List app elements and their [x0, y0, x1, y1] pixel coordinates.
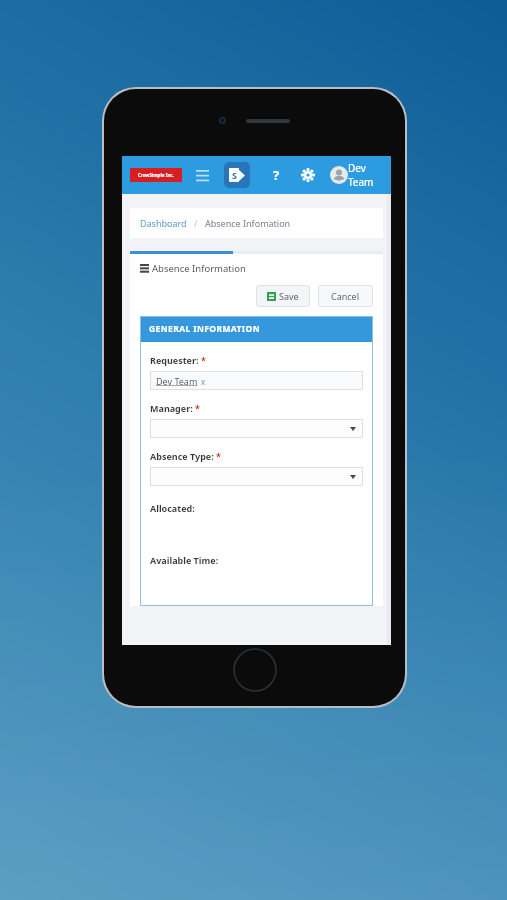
staticText: Manager:: [150, 402, 193, 414]
button[interactable]: CrowSimple Inc.: [130, 168, 182, 182]
staticText: GENERAL INFORMATION: [149, 323, 260, 335]
button[interactable]: SharePoint: [224, 162, 250, 188]
staticText: *: [195, 402, 200, 414]
staticText: Requester:: [150, 354, 199, 366]
staticText: Absence Infomation: [205, 217, 291, 229]
button[interactable]: Dropdown: [150, 419, 363, 438]
staticText: Dev Team: [348, 161, 383, 189]
staticText: Dev Team: [156, 375, 198, 387]
button[interactable]: Help: [266, 165, 286, 185]
staticText: Dashboard: [140, 217, 187, 229]
staticText: /: [187, 217, 205, 229]
staticText: *: [216, 450, 221, 462]
staticText: Absence Information: [152, 262, 246, 275]
staticText: Available Time:: [150, 554, 219, 566]
staticText: S: [232, 169, 237, 181]
button[interactable]: Dev Team: [150, 371, 363, 390]
staticText: Save: [279, 290, 299, 302]
staticText: Absence Type:: [150, 450, 214, 462]
staticText: CrowSimple Inc.: [138, 172, 174, 178]
button[interactable]: Dropdown: [150, 467, 363, 486]
button[interactable]: Menu: [192, 165, 212, 185]
button[interactable]: Settings: [298, 165, 318, 185]
button[interactable]: Dev Team: [330, 161, 383, 189]
staticText: Allocated:: [150, 502, 195, 514]
button[interactable]: Cancel: [318, 285, 373, 307]
staticText: Cancel: [331, 290, 360, 302]
staticText: ?: [273, 166, 280, 184]
staticText: *: [201, 354, 206, 366]
staticText: x: [201, 376, 206, 387]
button[interactable]: Save: [256, 285, 310, 307]
button[interactable]: Dashboard: [130, 208, 383, 238]
